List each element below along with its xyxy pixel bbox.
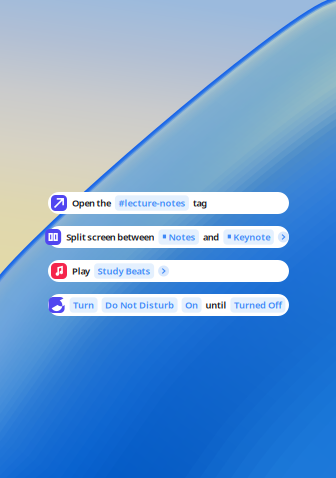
staticText: Turned Off <box>234 299 282 311</box>
staticText: Open the <box>72 197 111 209</box>
staticText: Notes <box>168 231 195 243</box>
button[interactable]: Play <box>48 260 289 282</box>
staticText: Split screen between <box>66 231 154 243</box>
staticText: and <box>203 231 219 243</box>
staticText: On <box>185 299 198 311</box>
staticText: tag <box>193 197 207 209</box>
staticText: Do Not Disturb <box>105 299 174 311</box>
staticText: until <box>206 299 226 311</box>
button[interactable]: Split screen between <box>48 226 289 248</box>
staticText: Play <box>72 265 90 277</box>
staticText: Turn <box>73 299 94 311</box>
button[interactable]: Turn <box>48 294 289 316</box>
staticText: Study Beats <box>98 265 151 277</box>
staticText: #lecture-notes <box>118 197 185 209</box>
staticText: Keynote <box>233 231 270 243</box>
button[interactable]: Open the <box>48 192 289 214</box>
